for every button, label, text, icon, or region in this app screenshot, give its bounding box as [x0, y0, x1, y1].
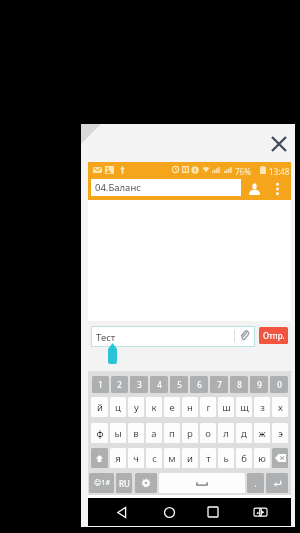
staticText: б [241, 452, 247, 465]
button[interactable]: Recent apps [201, 498, 225, 526]
button[interactable]: ф [91, 423, 108, 443]
staticText: 4 [157, 379, 162, 390]
button[interactable]: з [254, 397, 270, 417]
button[interactable]: RU [116, 473, 132, 493]
button[interactable]: ь [218, 448, 234, 468]
staticText: 3 [137, 379, 142, 390]
button[interactable]: с [146, 448, 162, 468]
staticText: ь [223, 452, 229, 465]
button[interactable]: и [182, 448, 198, 468]
button[interactable]: ю [254, 448, 270, 468]
button[interactable]: а [146, 423, 162, 443]
button[interactable]: к [146, 397, 162, 417]
button[interactable]: Settings [135, 473, 157, 493]
staticText: 6 [197, 379, 202, 390]
staticText: ч [133, 452, 139, 465]
button[interactable]: Backspace [272, 448, 288, 468]
button[interactable]: х [272, 397, 288, 417]
staticText: RU [119, 478, 130, 489]
staticText: 8 [237, 379, 242, 390]
staticText: р [187, 427, 193, 440]
button[interactable]: я [110, 448, 126, 468]
button[interactable]: ж [254, 423, 270, 443]
staticText: й [97, 401, 103, 414]
button[interactable]: Enter [266, 473, 288, 493]
button[interactable]: у [128, 397, 144, 417]
staticText: щ [240, 401, 249, 414]
button[interactable]: 2 [111, 376, 128, 393]
staticText: 76% [235, 166, 251, 177]
staticText: т [206, 452, 211, 465]
button[interactable]: Back [110, 498, 134, 526]
button[interactable]: 1 [92, 376, 109, 393]
staticText: 04.Баланс [95, 181, 141, 194]
button[interactable]: Attach file [234, 325, 254, 345]
staticText: к [151, 401, 157, 414]
staticText: с [152, 452, 157, 465]
staticText: в [133, 427, 139, 440]
staticText: ш [222, 401, 231, 414]
staticText: г [206, 401, 211, 414]
button[interactable]: 3 [130, 376, 148, 393]
button[interactable]: р [182, 423, 198, 443]
button[interactable]: м [164, 448, 180, 468]
staticText: Отпр. [263, 330, 285, 341]
button[interactable]: й [91, 397, 108, 417]
button[interactable]: 9 [250, 376, 268, 393]
staticText: 5 [177, 379, 182, 390]
staticText: д [241, 427, 247, 440]
staticText: у [134, 401, 139, 414]
button[interactable]: ш [218, 397, 234, 417]
button[interactable]: ☺1# [89, 473, 114, 493]
button[interactable]: Отпр. [259, 327, 288, 344]
button[interactable]: Тест [91, 326, 255, 347]
staticText: Тест [96, 331, 116, 344]
button[interactable]: . [247, 473, 264, 493]
button[interactable]: 4 [150, 376, 168, 393]
button[interactable]: щ [236, 397, 252, 417]
staticText: м [168, 452, 176, 465]
button[interactable]: 8 [230, 376, 248, 393]
staticText: 13:48 [269, 166, 290, 177]
button[interactable]: б [236, 448, 252, 468]
button[interactable]: ц [110, 397, 126, 417]
button[interactable]: 0 [270, 376, 288, 393]
button[interactable]: Close [266, 131, 291, 156]
staticText: х [278, 401, 283, 414]
staticText: ☺1# [94, 478, 110, 488]
button[interactable]: Home [157, 498, 181, 526]
button[interactable]: э [272, 423, 288, 443]
button[interactable]: е [164, 397, 180, 417]
button[interactable]: н [182, 397, 198, 417]
button[interactable]: 6 [190, 376, 208, 393]
button[interactable]: 04.Баланс [91, 179, 241, 196]
staticText: 2 [117, 379, 122, 390]
button[interactable]: ы [110, 423, 126, 443]
staticText: п [169, 427, 175, 440]
button[interactable]: п [164, 423, 180, 443]
staticText: о [205, 427, 211, 440]
staticText: ц [115, 401, 121, 414]
button[interactable]: г [200, 397, 216, 417]
staticText: э [278, 427, 283, 440]
button[interactable]: т [200, 448, 216, 468]
button[interactable]: Dual window [248, 498, 272, 526]
staticText: 1 [98, 379, 103, 390]
button[interactable]: Contacts [244, 177, 265, 200]
button[interactable]: Shift [91, 448, 108, 468]
button[interactable]: д [236, 423, 252, 443]
staticText: я [115, 452, 121, 465]
button[interactable]: Space [159, 473, 245, 493]
staticText: и [187, 452, 193, 465]
button[interactable]: о [200, 423, 216, 443]
button[interactable]: л [218, 423, 234, 443]
button[interactable]: 7 [210, 376, 228, 393]
button[interactable]: 5 [170, 376, 188, 393]
staticText: ф [96, 427, 104, 440]
staticText: а [151, 427, 157, 440]
button[interactable]: ч [128, 448, 144, 468]
staticText: 9 [257, 379, 262, 390]
button[interactable]: в [128, 423, 144, 443]
button[interactable]: More options [270, 177, 285, 200]
staticText: 0 [277, 379, 282, 390]
